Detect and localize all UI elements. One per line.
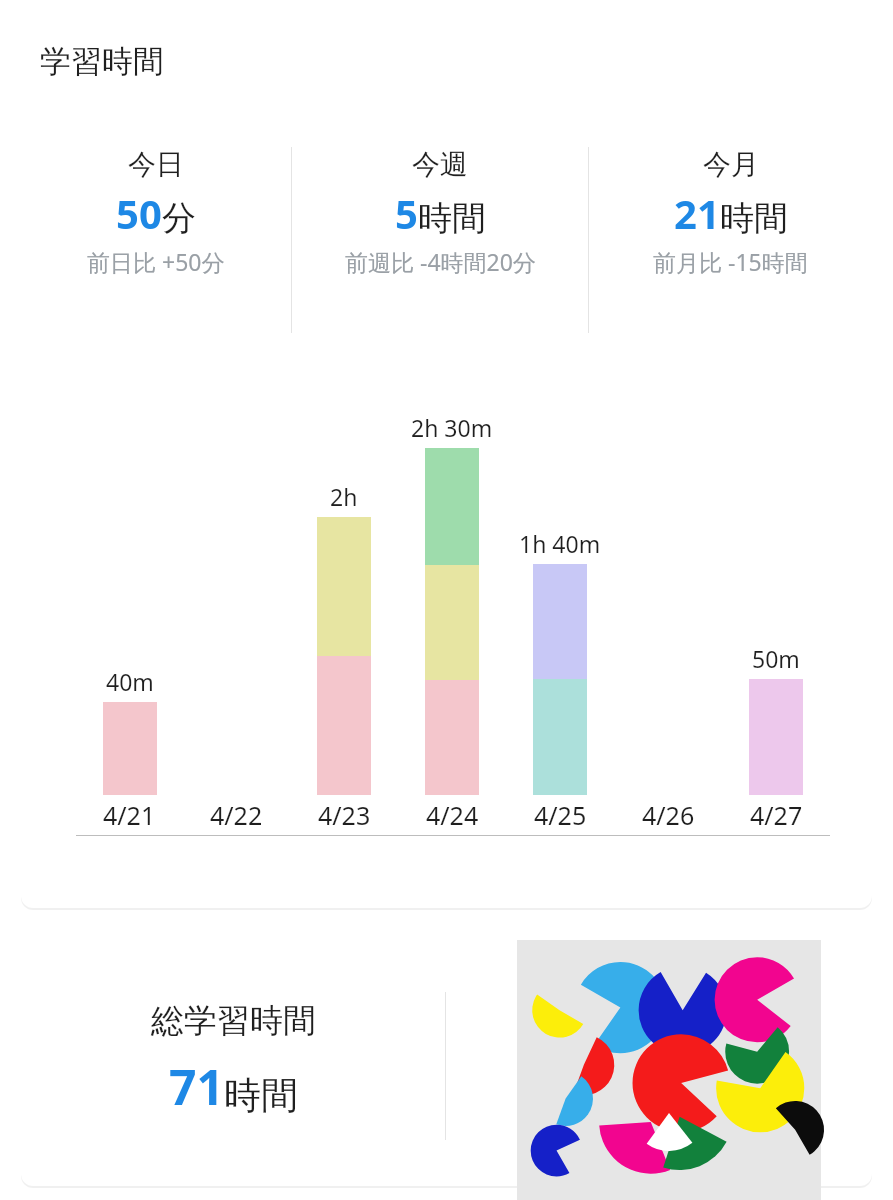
- staticText: 4/25: [534, 798, 587, 832]
- staticText: 71: [169, 1054, 224, 1119]
- staticText: 40m: [106, 666, 154, 697]
- staticText: 時間: [720, 197, 788, 240]
- staticText: 今週: [412, 147, 468, 182]
- staticText: 1h 40m: [519, 528, 601, 559]
- staticText: 4/21: [103, 798, 156, 832]
- staticText: 今月: [703, 147, 759, 182]
- staticText: 50: [116, 186, 162, 240]
- staticText: 2h: [330, 481, 358, 512]
- staticText: 4/23: [318, 798, 371, 832]
- staticText: 前日比 +50分: [87, 246, 225, 277]
- staticText: 21: [674, 186, 720, 240]
- button[interactable]: Color chips image: [517, 940, 821, 1200]
- staticText: 50m: [752, 643, 800, 674]
- staticText: 時間: [418, 197, 486, 240]
- staticText: 4/22: [210, 798, 263, 832]
- button[interactable]: 今日: [21, 147, 291, 277]
- staticText: 学習時間: [40, 42, 164, 81]
- staticText: 前月比 -15時間: [653, 246, 808, 277]
- staticText: 2h 30m: [411, 412, 493, 443]
- staticText: 前週比 -4時間20分: [345, 246, 536, 277]
- button[interactable]: 総学習時間: [21, 946, 445, 1186]
- button[interactable]: 今週: [292, 147, 588, 277]
- staticText: 4/27: [750, 798, 803, 832]
- staticText: 分: [162, 197, 196, 240]
- staticText: 4/24: [426, 798, 479, 832]
- button[interactable]: 今月: [589, 147, 872, 277]
- staticText: 4/26: [642, 798, 695, 832]
- staticText: 時間: [224, 1072, 298, 1119]
- staticText: 5: [395, 186, 418, 240]
- staticText: 総学習時間: [151, 1000, 316, 1042]
- staticText: 今日: [128, 147, 184, 182]
